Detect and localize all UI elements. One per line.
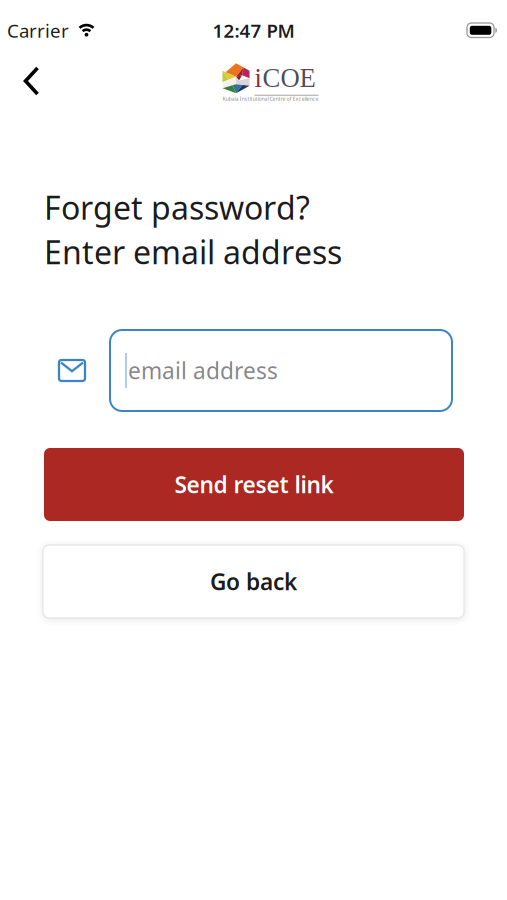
button[interactable]: Back xyxy=(0,60,59,102)
button[interactable]: Send reset link xyxy=(0,448,507,521)
button[interactable]: email address xyxy=(110,330,452,411)
staticText: email address xyxy=(128,355,278,385)
staticText: Carrier xyxy=(7,18,69,43)
staticText: COE xyxy=(262,63,315,93)
staticText: Enter email address xyxy=(44,230,342,273)
staticText: Kubala Institutional Centre of Excellenc… xyxy=(222,95,318,102)
staticText: Go back xyxy=(210,566,297,596)
staticText: i xyxy=(254,63,261,93)
staticText: 12:47 PM xyxy=(212,18,294,43)
staticText: Send reset link xyxy=(174,469,333,499)
staticText: Forget password? xyxy=(44,186,310,228)
button[interactable]: Go back xyxy=(0,545,507,618)
